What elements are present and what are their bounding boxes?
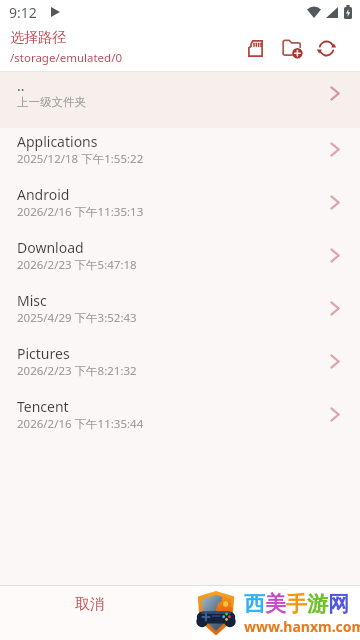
staticText: 2025/12/18 下午1:55:22 <box>17 151 144 167</box>
button[interactable]: .. <box>0 72 360 128</box>
staticText: Download <box>17 238 84 257</box>
staticText: 西 <box>244 591 265 617</box>
staticText: 2025/4/29 下午3:52:43 <box>17 310 137 326</box>
staticText: Misc <box>17 291 47 310</box>
staticText: 网 <box>328 591 349 617</box>
staticText: Pictures <box>17 344 70 363</box>
button[interactable]: Tencent <box>0 393 360 446</box>
button[interactable]: Misc <box>0 287 360 340</box>
staticText: 2026/2/23 下午5:47:18 <box>17 257 137 273</box>
button[interactable]: Pictures <box>0 340 360 393</box>
staticText: 上一级文件夹 <box>17 95 86 109</box>
staticText: Applications <box>17 132 98 151</box>
staticText: 选择路径 <box>10 29 66 47</box>
button[interactable]: 取消 <box>0 586 180 640</box>
staticText: /storage/emulated/0 <box>10 50 123 66</box>
button[interactable]: Download <box>0 234 360 287</box>
staticText: 美 <box>265 591 286 617</box>
staticText: Android <box>17 185 70 204</box>
staticText: Tencent <box>17 397 69 416</box>
staticText: 2026/2/16 下午11:35:13 <box>17 204 144 220</box>
staticText: www.hanxm.com <box>244 617 360 636</box>
staticText: 2026/2/16 下午11:35:44 <box>17 416 144 432</box>
staticText: 取消 <box>75 595 105 614</box>
staticText: 9:12 <box>9 3 37 22</box>
button[interactable]: Applications <box>0 128 360 181</box>
staticText: 手 <box>286 591 307 617</box>
button[interactable] <box>278 34 306 62</box>
button[interactable] <box>241 34 269 62</box>
staticText: .. <box>17 76 25 95</box>
button[interactable] <box>312 34 340 62</box>
button[interactable]: Android <box>0 181 360 234</box>
staticText: 游 <box>307 591 328 617</box>
staticText: 2026/2/23 下午8:21:32 <box>17 363 137 379</box>
